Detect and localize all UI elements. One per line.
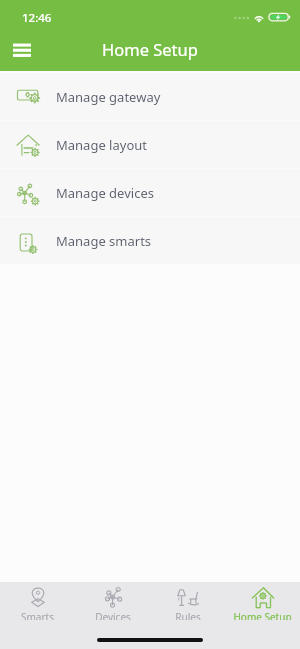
staticText: Manage smarts (56, 232, 152, 250)
button[interactable]: Home Setup (225, 587, 300, 620)
staticText: Smarts (21, 610, 54, 620)
button[interactable]: Menu (0, 28, 44, 71)
staticText: Manage layout (56, 136, 147, 154)
button[interactable]: Manage layout (0, 121, 300, 168)
staticText: Home Setup (102, 38, 198, 60)
staticText: Home Setup (233, 610, 292, 620)
button[interactable]: Smarts (0, 587, 75, 620)
staticText: Manage devices (56, 184, 154, 202)
button[interactable]: Devices (75, 587, 150, 620)
button[interactable]: Manage smarts (0, 217, 300, 264)
staticText: 12:46 (22, 10, 52, 26)
button[interactable]: Manage devices (0, 169, 300, 216)
staticText: Devices (95, 610, 131, 620)
staticText: Manage gateway (56, 88, 161, 106)
button[interactable]: Rules (150, 587, 225, 620)
button[interactable]: Manage gateway (0, 73, 300, 120)
staticText: Rules (175, 610, 201, 620)
